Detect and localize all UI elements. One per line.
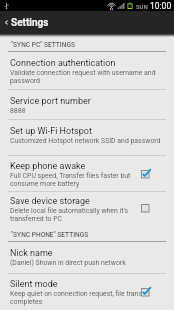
staticText: Set up Wi-Fi Hotspot [10,126,92,137]
staticText: Nick name [10,248,53,259]
button[interactable]: Back [0,11,174,34]
staticText: 10:00 [150,1,172,11]
staticText: "SYNC PHONE" SETTINGS [11,231,89,239]
staticText: Full CPU speed, Transfer files faster bu… [10,172,151,188]
staticText: Service port number [10,96,91,107]
staticText: 8888 [10,107,26,115]
staticText: Validate connection request with usernam… [10,69,166,85]
staticText: Keep quiet on connection request, file t… [10,290,151,306]
button[interactable]: Save device storage [0,192,174,223]
button[interactable]: Connection authentication [0,52,174,90]
button[interactable]: Keep phone awake [0,156,174,192]
button[interactable]: Silent mode [0,274,174,310]
staticText: Connection authentication [10,58,116,69]
button[interactable]: Set up Wi-Fi Hotspot [0,120,174,156]
staticText: Customized Hotspot network SSID and pass… [10,137,161,145]
staticText: SUN [136,3,148,10]
staticText: (Daniel) Shown in direct push network [10,259,126,267]
staticText: "SYNC PC" SETTINGS [11,41,75,49]
staticText: Delete local file automatically when it'… [10,207,151,223]
staticText: Settings [11,17,49,29]
staticText: Silent mode [10,279,58,290]
button[interactable]: Service port number [0,90,174,120]
staticText: Keep phone awake [10,161,86,172]
staticText: Save device storage [10,196,90,207]
button[interactable]: Nick name [0,242,174,274]
